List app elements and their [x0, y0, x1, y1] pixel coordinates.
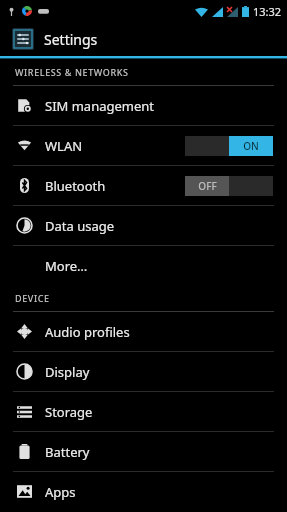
button[interactable]: More… — [0, 246, 287, 285]
button[interactable]: Audio profiles — [0, 312, 287, 351]
button[interactable]: Apps — [0, 472, 287, 511]
button[interactable]: SIM management — [0, 86, 287, 125]
staticText: WIRELESS & NETWORKS — [15, 66, 129, 78]
staticText: WLAN — [45, 137, 83, 155]
staticText: ON — [243, 139, 259, 153]
staticText: Display — [45, 363, 90, 381]
staticText: More… — [45, 257, 88, 275]
staticText: Apps — [45, 483, 76, 501]
button[interactable]: WLAN — [0, 126, 287, 165]
staticText: Bluetooth — [45, 177, 106, 195]
button[interactable]: OFF — [185, 176, 273, 196]
button[interactable]: Battery — [0, 432, 287, 471]
button[interactable]: Settings — [0, 22, 287, 56]
staticText: Battery — [45, 443, 90, 461]
staticText: Data usage — [45, 217, 115, 235]
button[interactable]: Bluetooth — [0, 166, 287, 205]
button[interactable]: Data usage — [0, 206, 287, 245]
staticText: OFF — [198, 179, 217, 193]
button[interactable]: Storage — [0, 392, 287, 431]
button[interactable]: Display — [0, 352, 287, 391]
staticText: Storage — [45, 403, 93, 421]
staticText: DEVICE — [15, 292, 50, 304]
staticText: SIM management — [45, 97, 155, 115]
staticText: Settings — [44, 30, 98, 49]
staticText: 13:32 — [253, 4, 282, 19]
button[interactable]: ON — [185, 136, 273, 156]
staticText: Audio profiles — [45, 323, 130, 341]
